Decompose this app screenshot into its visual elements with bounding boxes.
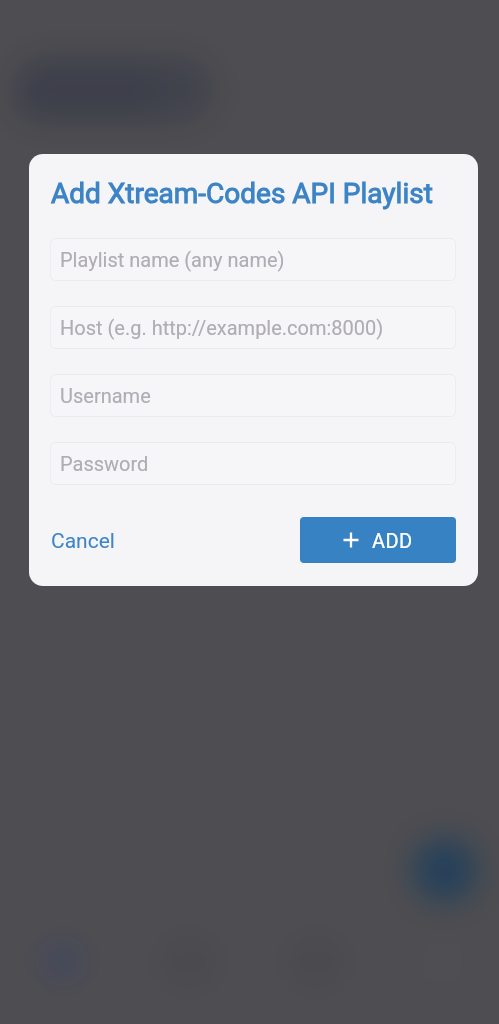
staticText: Add Xtream-Codes API Playlist bbox=[51, 177, 433, 210]
staticText: Password bbox=[60, 452, 149, 475]
button[interactable]: Host (e.g. http://example.com:8000) bbox=[50, 306, 456, 349]
button[interactable]: Dismiss dialog bbox=[0, 0, 499, 1024]
button[interactable]: Cancel bbox=[42, 520, 124, 563]
button[interactable]: Add bbox=[300, 517, 456, 563]
other: Add bbox=[343, 532, 359, 548]
staticText: Host (e.g. http://example.com:8000) bbox=[60, 316, 384, 339]
staticText: Playlist name (any name) bbox=[60, 248, 285, 271]
button[interactable]: Username bbox=[50, 374, 456, 417]
staticText: ADD bbox=[372, 529, 413, 552]
button[interactable]: Playlist name (any name) bbox=[50, 238, 456, 281]
staticText: Username bbox=[60, 384, 151, 407]
button[interactable]: Password bbox=[50, 442, 456, 485]
staticText: Cancel bbox=[51, 529, 115, 554]
